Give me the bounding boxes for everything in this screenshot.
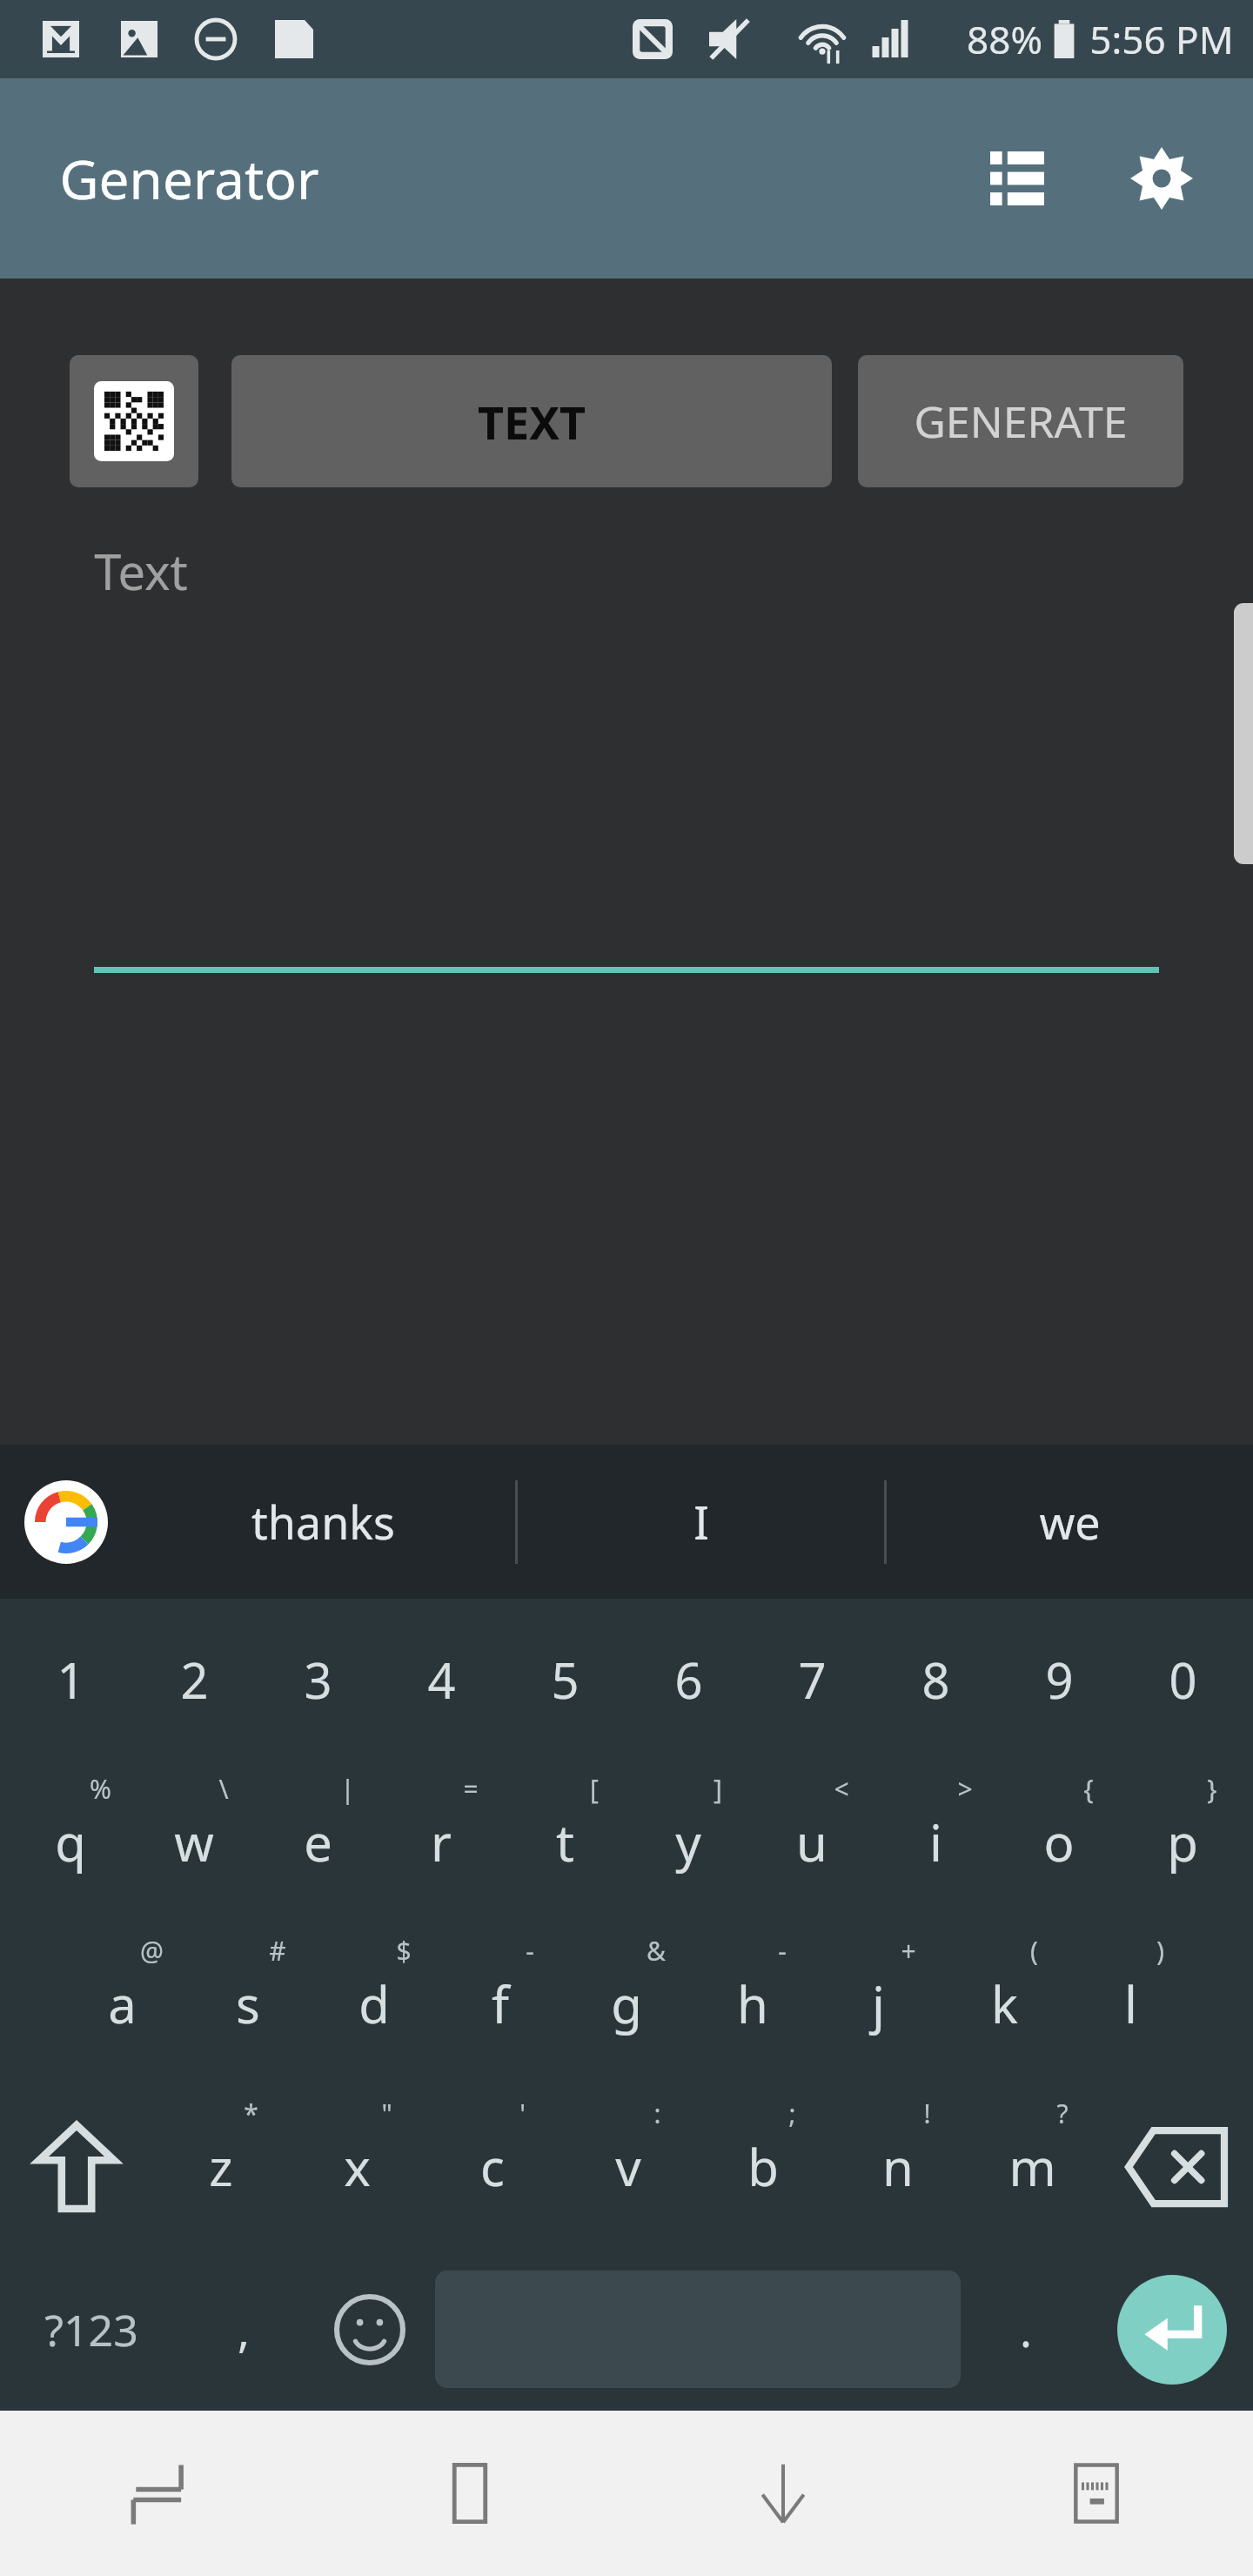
- button[interactable]: 7: [750, 1599, 874, 1761]
- button[interactable]: r: [379, 1761, 503, 1922]
- button[interactable]: d: [311, 1922, 437, 2085]
- button[interactable]: Emoji: [305, 2248, 435, 2411]
- button[interactable]: t: [503, 1761, 626, 1922]
- button[interactable]: Barcode type: [70, 355, 198, 487]
- staticText: 4: [427, 1647, 456, 1713]
- staticText: g: [611, 1969, 642, 2038]
- staticText: ": [381, 2096, 392, 2131]
- button[interactable]: x: [289, 2085, 425, 2248]
- button[interactable]: ?123: [0, 2248, 183, 2411]
- staticText: ': [519, 2096, 526, 2131]
- button[interactable]: 2: [132, 1599, 256, 1761]
- button[interactable]: l: [1068, 1922, 1194, 2085]
- button[interactable]: h: [689, 1922, 815, 2085]
- staticText: 8: [921, 1647, 950, 1713]
- staticText: 3: [304, 1647, 332, 1713]
- button[interactable]: i: [874, 1761, 997, 1922]
- staticText: we: [1039, 1491, 1101, 1553]
- button[interactable]: j: [815, 1922, 941, 2085]
- button[interactable]: History list: [961, 122, 1074, 235]
- staticText: n: [882, 2132, 914, 2201]
- staticText: 9: [1045, 1647, 1074, 1713]
- button[interactable]: Home: [313, 2411, 626, 2576]
- button[interactable]: m: [965, 2085, 1100, 2248]
- button[interactable]: o: [997, 1761, 1121, 1922]
- button[interactable]: e: [256, 1761, 379, 1922]
- button[interactable]: 1: [9, 1599, 132, 1761]
- button[interactable]: y: [626, 1761, 750, 1922]
- staticText: *: [244, 2096, 258, 2131]
- button[interactable]: 3: [256, 1599, 379, 1761]
- button[interactable]: b: [695, 2085, 830, 2248]
- staticText: (: [1030, 1933, 1038, 1969]
- button[interactable]: q: [9, 1761, 132, 1922]
- button[interactable]: Switch keyboard: [940, 2411, 1253, 2576]
- staticText: p: [1167, 1808, 1198, 1876]
- staticText: [: [590, 1771, 599, 1807]
- button[interactable]: we: [887, 1445, 1253, 1599]
- button[interactable]: u: [750, 1761, 874, 1922]
- staticText: i: [929, 1808, 942, 1876]
- button[interactable]: 6: [626, 1599, 750, 1761]
- staticText: 88%: [967, 13, 1042, 65]
- button[interactable]: c: [425, 2085, 560, 2248]
- button[interactable]: Enter: [1091, 2248, 1253, 2411]
- button[interactable]: 9: [997, 1599, 1121, 1761]
- staticText: thanks: [251, 1491, 395, 1553]
- staticText: 0: [1169, 1647, 1197, 1713]
- button[interactable]: .: [961, 2248, 1091, 2411]
- button[interactable]: thanks: [131, 1445, 515, 1599]
- staticText: y: [675, 1808, 701, 1876]
- button[interactable]: TEXT: [231, 355, 832, 487]
- staticText: ,: [238, 2298, 250, 2360]
- button[interactable]: w: [132, 1761, 256, 1922]
- staticText: u: [796, 1808, 828, 1876]
- staticText: f: [492, 1969, 509, 2038]
- button[interactable]: Text: [94, 538, 1159, 973]
- staticText: =: [463, 1771, 479, 1807]
- button[interactable]: g: [563, 1922, 689, 2085]
- button[interactable]: f: [437, 1922, 563, 2085]
- button[interactable]: a: [59, 1922, 184, 2085]
- button[interactable]: Google: [21, 1477, 111, 1567]
- staticText: h: [737, 1969, 768, 2038]
- button[interactable]: 5: [503, 1599, 626, 1761]
- button[interactable]: Generator: [59, 142, 319, 215]
- button[interactable]: Backspace: [1100, 2085, 1253, 2248]
- staticText: Text: [94, 538, 188, 604]
- staticText: z: [209, 2132, 233, 2201]
- staticText: m: [1008, 2132, 1056, 2201]
- button[interactable]: 4: [379, 1599, 503, 1761]
- staticText: c: [480, 2132, 505, 2201]
- staticText: k: [991, 1969, 1018, 2038]
- staticText: TEXT: [478, 391, 586, 453]
- button[interactable]: Shift: [0, 2085, 153, 2248]
- button[interactable]: 0: [1121, 1599, 1244, 1761]
- staticText: .: [1020, 2298, 1032, 2360]
- button[interactable]: Hide keyboard: [626, 2411, 940, 2576]
- staticText: $: [396, 1933, 412, 1969]
- staticText: 5: [551, 1647, 580, 1713]
- button[interactable]: z: [153, 2085, 289, 2248]
- staticText: {: [1083, 1771, 1094, 1807]
- button[interactable]: p: [1121, 1761, 1244, 1922]
- staticText: ;: [788, 2096, 796, 2131]
- staticText: s: [236, 1969, 260, 2038]
- button[interactable]: v: [560, 2085, 695, 2248]
- button[interactable]: ,: [183, 2248, 305, 2411]
- staticText: 7: [798, 1647, 827, 1713]
- button[interactable]: I: [518, 1445, 884, 1599]
- button[interactable]: s: [184, 1922, 311, 2085]
- staticText: o: [1043, 1808, 1075, 1876]
- button[interactable]: n: [830, 2085, 965, 2248]
- button[interactable]: k: [941, 1922, 1068, 2085]
- button[interactable]: Settings: [1105, 122, 1218, 235]
- button[interactable]: Recents: [0, 2411, 313, 2576]
- button[interactable]: 8: [874, 1599, 997, 1761]
- staticText: -: [778, 1933, 787, 1969]
- staticText: ): [1156, 1933, 1164, 1969]
- staticText: t: [556, 1808, 574, 1876]
- button[interactable]: GENERATE: [858, 355, 1183, 487]
- staticText: @: [140, 1933, 164, 1969]
